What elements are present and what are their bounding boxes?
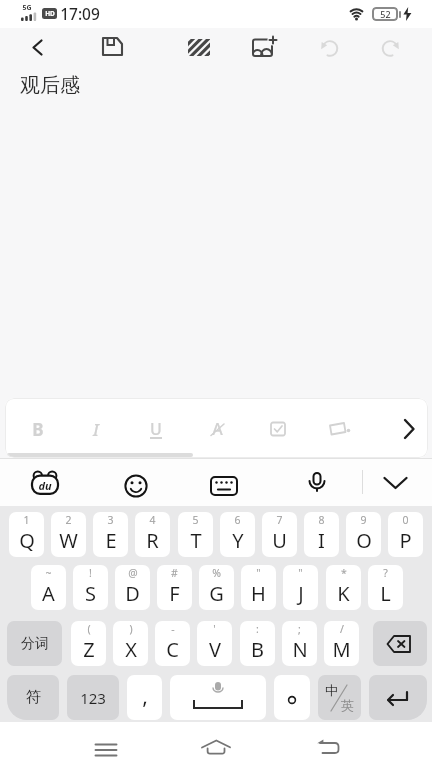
- staticText: *: [341, 566, 347, 580]
- button[interactable]: ;: [282, 621, 317, 666]
- staticText: 符: [26, 688, 41, 707]
- button[interactable]: 1: [9, 512, 44, 557]
- button[interactable]: 6: [220, 512, 255, 557]
- button[interactable]: [369, 675, 427, 720]
- staticText: U: [150, 418, 162, 440]
- staticText: ;: [298, 622, 301, 636]
- staticText: -: [171, 622, 175, 636]
- staticText: T: [190, 527, 202, 554]
- button[interactable]: [188, 39, 210, 56]
- staticText: O: [356, 527, 372, 554]
- staticText: ?: [383, 566, 388, 580]
- button[interactable]: [170, 675, 266, 720]
- staticText: 分词: [21, 635, 49, 653]
- button[interactable]: !: [73, 565, 108, 610]
- staticText: C: [166, 636, 179, 663]
- staticText: @: [128, 566, 138, 580]
- staticText: 7: [276, 513, 283, 527]
- button[interactable]: :: [240, 621, 275, 666]
- button[interactable]: 8: [304, 512, 339, 557]
- button[interactable]: [383, 476, 408, 491]
- staticText: B: [251, 636, 264, 663]
- staticText: A: [212, 418, 223, 440]
- staticText: K: [337, 580, 350, 607]
- button[interactable]: 符: [7, 675, 59, 720]
- button[interactable]: ": [283, 565, 318, 610]
- button[interactable]: 中: [318, 675, 361, 720]
- staticText: 2: [65, 513, 72, 527]
- staticText: S: [85, 580, 96, 607]
- staticText: 8: [318, 513, 325, 527]
- button[interactable]: I: [83, 417, 108, 441]
- staticText: HD: [45, 9, 55, 18]
- staticText: X: [125, 636, 137, 663]
- button[interactable]: [266, 417, 291, 441]
- button[interactable]: 3: [93, 512, 128, 557]
- button[interactable]: [379, 37, 401, 59]
- button[interactable]: B: [25, 417, 50, 441]
- button[interactable]: du: [31, 471, 59, 495]
- staticText: (: [87, 622, 91, 636]
- button[interactable]: [199, 736, 229, 762]
- button[interactable]: ): [113, 621, 148, 666]
- button[interactable]: 5: [178, 512, 213, 557]
- staticText: R: [146, 527, 159, 554]
- staticText: !: [89, 566, 92, 580]
- staticText: ,: [142, 682, 148, 711]
- staticText: E: [105, 527, 117, 554]
- staticText: 123: [80, 688, 106, 708]
- button[interactable]: %: [199, 565, 234, 610]
- button[interactable]: ,: [127, 675, 162, 720]
- button[interactable]: #: [157, 565, 192, 610]
- button[interactable]: [313, 736, 343, 762]
- staticText: Y: [232, 527, 244, 554]
- button[interactable]: [306, 472, 328, 496]
- button[interactable]: [95, 738, 117, 762]
- staticText: 52: [380, 8, 391, 20]
- button[interactable]: 9: [346, 512, 381, 557]
- button[interactable]: [319, 37, 341, 59]
- staticText: 5G: [22, 3, 32, 13]
- button[interactable]: 2: [51, 512, 86, 557]
- button[interactable]: 7: [262, 512, 297, 557]
- staticText: ~: [45, 566, 52, 580]
- button[interactable]: (: [71, 621, 106, 666]
- button[interactable]: -: [155, 621, 190, 666]
- button[interactable]: [252, 37, 278, 57]
- button[interactable]: /: [324, 621, 359, 666]
- button[interactable]: [102, 37, 124, 57]
- button[interactable]: 4: [135, 512, 170, 557]
- button[interactable]: 分词: [7, 621, 62, 666]
- button[interactable]: [210, 476, 238, 496]
- staticText: ': [213, 622, 216, 636]
- staticText: #: [171, 566, 178, 580]
- staticText: ": [298, 566, 303, 580]
- staticText: J: [298, 580, 304, 607]
- staticText: L: [380, 580, 391, 607]
- button[interactable]: A: [205, 417, 230, 441]
- button[interactable]: [373, 621, 427, 666]
- button[interactable]: *: [326, 565, 361, 610]
- staticText: 6: [234, 513, 241, 527]
- button[interactable]: ?: [368, 565, 403, 610]
- button[interactable]: [397, 415, 421, 443]
- button[interactable]: ~: [31, 565, 66, 610]
- staticText: I: [93, 418, 99, 441]
- button[interactable]: [274, 675, 310, 720]
- button[interactable]: [124, 474, 148, 498]
- staticText: V: [209, 636, 221, 663]
- staticText: 5: [192, 513, 199, 527]
- button[interactable]: [24, 34, 50, 60]
- button[interactable]: ': [197, 621, 232, 666]
- staticText: ": [256, 566, 261, 580]
- button[interactable]: @: [115, 565, 150, 610]
- staticText: D: [125, 580, 140, 607]
- button[interactable]: [326, 417, 351, 441]
- button[interactable]: U: [143, 417, 168, 441]
- staticText: H: [251, 580, 266, 607]
- button[interactable]: ": [241, 565, 276, 610]
- staticText: /: [340, 622, 344, 636]
- button[interactable]: 123: [67, 675, 119, 720]
- staticText: %: [212, 566, 221, 580]
- button[interactable]: 0: [388, 512, 423, 557]
